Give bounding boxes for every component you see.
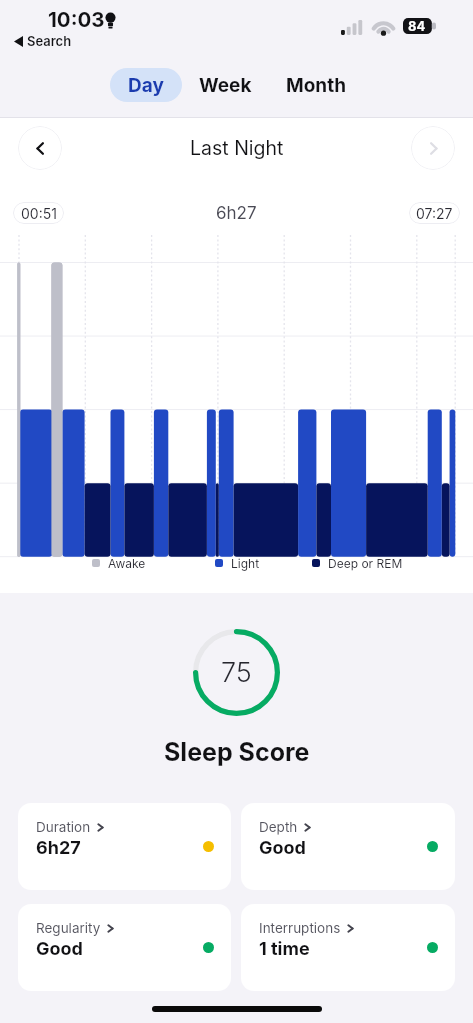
staticText: Light — [231, 556, 260, 571]
staticText: Month — [286, 74, 347, 97]
button[interactable]: Day — [110, 68, 182, 102]
staticText: Sleep Score — [164, 737, 310, 767]
staticText: Week — [199, 74, 252, 97]
staticText: 07:27 — [416, 205, 453, 222]
button[interactable]: Week — [182, 68, 268, 102]
button[interactable]: Month — [268, 68, 364, 102]
staticText: 75 — [221, 656, 252, 689]
staticText: 00:51 — [21, 205, 57, 222]
staticText: Last Night — [190, 136, 284, 160]
staticText: Regularity — [36, 920, 101, 936]
staticText: Deep or REM — [328, 556, 403, 571]
staticText: 84 — [408, 18, 426, 34]
button[interactable]: Next night — [411, 126, 455, 170]
staticText: 10:03 — [48, 7, 105, 32]
staticText: Duration — [36, 819, 91, 835]
staticText: Interruptions — [259, 920, 341, 936]
button[interactable]: Previous night — [18, 126, 62, 170]
staticText: Day — [128, 74, 164, 97]
staticText: Depth — [259, 819, 298, 835]
button[interactable]: Regularity — [18, 904, 231, 991]
button[interactable]: Interruptions — [241, 904, 455, 991]
staticText: Good — [36, 938, 83, 960]
staticText: Search — [27, 33, 72, 49]
button[interactable]: Depth — [241, 803, 455, 890]
staticText: 6h27 — [216, 203, 257, 224]
staticText: 6h27 — [36, 837, 81, 859]
staticText: Good — [259, 837, 306, 859]
staticText: 1 time — [259, 938, 310, 960]
staticText: Awake — [108, 556, 146, 571]
button[interactable]: Duration — [18, 803, 231, 890]
